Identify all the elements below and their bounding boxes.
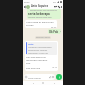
staticText: 10.12 [52, 66, 57, 69]
staticText: yah [26, 61, 31, 64]
staticText: Keamanan Terbaik [28, 49, 48, 52]
button[interactable]: Attach [49, 76, 51, 78]
button[interactable]: Nanti juga di data buku [25, 20, 57, 28]
staticText: Anto Saputra [31, 4, 48, 8]
staticText: 4G [53, 1, 56, 4]
staticText: 09.45 [24, 1, 30, 4]
button[interactable]: KEMARIN 09.50 [35, 36, 51, 39]
button[interactable]: Back [53, 82, 55, 84]
button[interactable]: Call [57, 5, 60, 8]
staticText: sdh kasi cek [26, 66, 41, 69]
button[interactable]: Ketik pesan [24, 74, 55, 80]
staticText: serta beberapa [28, 12, 50, 16]
staticText: ya pak [26, 23, 34, 26]
staticText: tempat wisata yang ada [28, 16, 52, 19]
staticText: Maksimal 2 ORANG [28, 52, 48, 55]
staticText: Anto [28, 43, 34, 46]
staticText: Tak ada daftar isi [26, 55, 46, 58]
staticText: KEMARIN 09.50 [36, 36, 50, 39]
button[interactable]: Anto [25, 41, 58, 71]
button[interactable]: Recents [32, 82, 34, 84]
button[interactable]: Back [23, 5, 26, 8]
button[interactable]: Video call [54, 5, 57, 8]
staticText: terlampir kemarin [26, 58, 48, 61]
staticText: pengalaman nya selama ini [30, 9, 57, 12]
button[interactable]: More options [60, 6, 62, 8]
staticText: Nanti juga di data buku [26, 20, 54, 23]
staticText: Ketik pesan [28, 76, 41, 79]
button[interactable]: pengalaman nya selama ini [27, 9, 61, 19]
button[interactable]: Ok Pak [48, 29, 61, 34]
staticText: 09.46 [51, 26, 56, 28]
staticText: Lengkap Perlengkapan [28, 46, 52, 49]
staticText: Ok Pak [49, 30, 59, 33]
button[interactable]: Voice message [56, 74, 62, 80]
